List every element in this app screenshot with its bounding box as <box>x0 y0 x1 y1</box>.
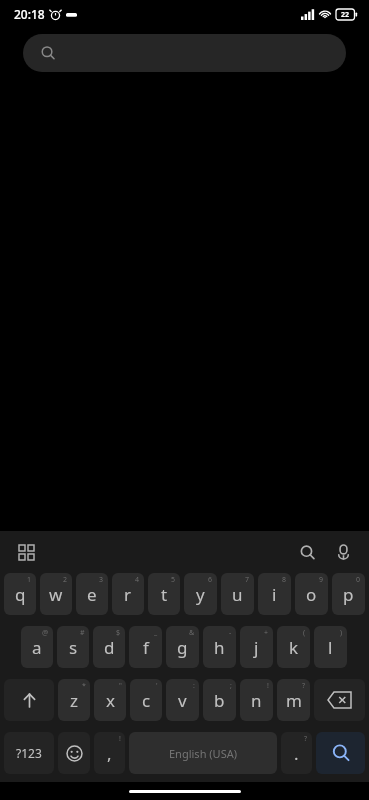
staticText: m <box>286 689 302 712</box>
staticText: 8 <box>282 575 287 585</box>
staticText: 2 <box>63 575 68 585</box>
button[interactable]: r <box>112 573 144 615</box>
button[interactable]: v <box>166 679 199 721</box>
staticText: + <box>264 628 269 638</box>
staticText: j <box>254 636 259 659</box>
button[interactable]: k <box>277 626 310 668</box>
staticText: " <box>119 681 122 691</box>
staticText: 22 <box>341 10 350 20</box>
staticText: c <box>142 689 151 712</box>
staticText: 7 <box>245 575 250 585</box>
staticText: z <box>70 689 78 712</box>
staticText: $ <box>116 628 121 638</box>
staticText: i <box>272 583 277 606</box>
button[interactable]: a <box>21 626 53 668</box>
staticText: 3 <box>99 575 104 585</box>
button[interactable]: j <box>240 626 273 668</box>
button[interactable]: d <box>93 626 125 668</box>
button[interactable]: . <box>281 732 312 774</box>
button[interactable]: c <box>130 679 162 721</box>
staticText: b <box>214 689 225 712</box>
staticText: ? <box>304 734 308 744</box>
button[interactable]: Toolbar <box>9 535 43 569</box>
button[interactable]: Search <box>289 534 325 570</box>
button[interactable]: n <box>240 679 273 721</box>
button[interactable]: ?123 <box>4 732 54 774</box>
staticText: ! <box>119 734 121 744</box>
staticText: o <box>306 583 317 606</box>
button[interactable]: l <box>314 626 347 668</box>
button[interactable]: u <box>221 573 254 615</box>
staticText: 1 <box>27 575 32 585</box>
staticText: 4 <box>135 575 140 585</box>
staticText: English (USA) <box>169 746 237 761</box>
staticText: u <box>232 583 243 606</box>
staticText: * <box>82 681 86 691</box>
button[interactable]: z <box>58 679 90 721</box>
staticText: e <box>87 583 97 606</box>
staticText: - <box>229 628 232 638</box>
button[interactable]: t <box>148 573 180 615</box>
staticText: v <box>178 689 187 712</box>
staticText: h <box>214 636 225 659</box>
staticText: g <box>177 636 188 659</box>
staticText: _ <box>154 628 158 638</box>
button[interactable]: w <box>40 573 72 615</box>
button[interactable]: Backspace <box>314 679 365 721</box>
staticText: & <box>189 628 195 638</box>
staticText: , <box>107 742 112 765</box>
staticText: d <box>104 636 115 659</box>
staticText: : <box>193 681 195 691</box>
staticText: q <box>15 583 26 606</box>
button[interactable]: g <box>166 626 199 668</box>
staticText: a <box>32 636 42 659</box>
staticText: 5 <box>171 575 176 585</box>
button[interactable]: x <box>94 679 126 721</box>
staticText: 6 <box>208 575 213 585</box>
staticText: p <box>343 583 354 606</box>
button[interactable]: Space <box>129 732 277 774</box>
staticText: ; <box>230 681 232 691</box>
staticText: @ <box>42 628 49 638</box>
button[interactable]: i <box>258 573 291 615</box>
staticText: 9 <box>319 575 324 585</box>
button[interactable]: m <box>277 679 310 721</box>
button[interactable]: y <box>184 573 217 615</box>
staticText: x <box>106 689 115 712</box>
staticText: ( <box>303 628 306 638</box>
staticText: s <box>69 636 78 659</box>
button[interactable]: o <box>295 573 328 615</box>
staticText: # <box>80 628 85 638</box>
button[interactable]: Emoji <box>58 732 90 774</box>
staticText: 20:18 <box>14 6 45 22</box>
staticText: t <box>161 583 168 606</box>
staticText: ) <box>340 628 343 638</box>
staticText: ' <box>156 681 158 691</box>
button[interactable]: p <box>332 573 365 615</box>
staticText: r <box>124 583 132 606</box>
staticText: ? <box>302 681 306 691</box>
button[interactable]: , <box>94 732 125 774</box>
button[interactable]: h <box>203 626 236 668</box>
staticText: y <box>196 583 205 606</box>
button[interactable]: f <box>129 626 162 668</box>
button[interactable]: s <box>57 626 89 668</box>
staticText: ?123 <box>16 745 42 761</box>
staticText: 0 <box>356 575 361 585</box>
staticText: n <box>251 689 262 712</box>
button[interactable]: Search <box>316 732 365 774</box>
button[interactable]: e <box>76 573 108 615</box>
button[interactable]: Voice input <box>325 534 361 570</box>
staticText: f <box>143 636 149 659</box>
button[interactable]: b <box>203 679 236 721</box>
staticText: l <box>328 636 333 659</box>
button[interactable]: Shift <box>4 679 54 721</box>
staticText: k <box>289 636 299 659</box>
staticText: . <box>294 742 299 765</box>
staticText: w <box>49 583 63 606</box>
button[interactable] <box>23 34 346 72</box>
staticText: ! <box>267 681 269 691</box>
button[interactable]: q <box>4 573 36 615</box>
